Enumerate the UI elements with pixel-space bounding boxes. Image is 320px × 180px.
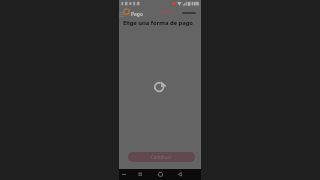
button[interactable]: Back (171, 169, 201, 180)
button[interactable]: Refresh (153, 80, 167, 94)
staticText: Elige una forma de pago (123, 19, 193, 27)
button[interactable]: Continuar (128, 152, 195, 162)
button[interactable]: More options (182, 12, 196, 14)
button[interactable]: Home (149, 169, 171, 180)
staticText: Pago (131, 11, 143, 18)
button[interactable]: Recent apps (131, 169, 149, 180)
button[interactable]: Menu (119, 11, 124, 16)
button[interactable]: Hide keyboard (119, 169, 131, 180)
staticText: Continuar (151, 154, 172, 160)
